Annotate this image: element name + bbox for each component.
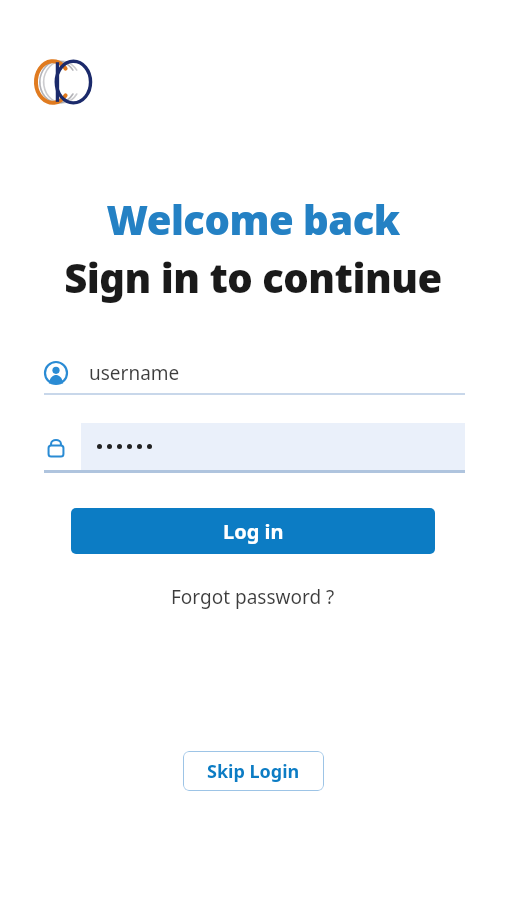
staticText: Forgot password ? xyxy=(171,584,335,610)
button[interactable]: username xyxy=(44,350,465,395)
staticText: username xyxy=(89,360,180,386)
button[interactable] xyxy=(44,423,465,470)
button[interactable]: Log in xyxy=(71,508,435,554)
staticText: Log in xyxy=(223,518,284,545)
button[interactable]: Skip Login xyxy=(183,751,324,791)
staticText: Sign in to continue xyxy=(64,250,442,304)
staticText: Skip Login xyxy=(207,759,300,784)
other: App logo xyxy=(30,55,100,107)
button[interactable]: Forgot password ? xyxy=(163,580,343,614)
staticText: Welcome back xyxy=(106,192,400,246)
